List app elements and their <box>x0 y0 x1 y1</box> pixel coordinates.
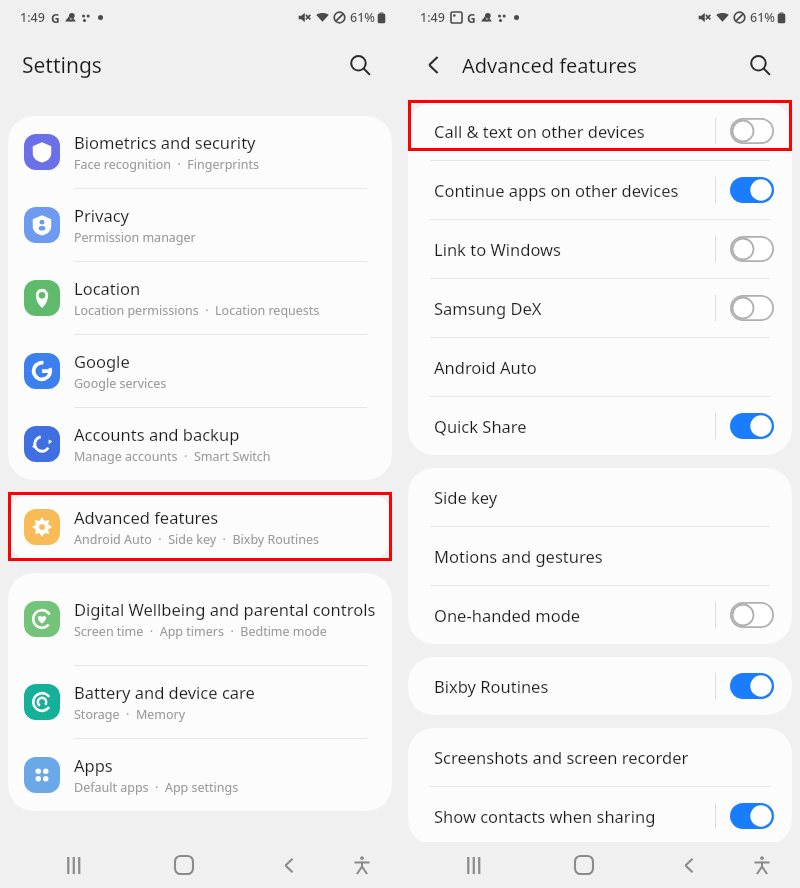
button[interactable]: Battery and device care <box>8 666 392 738</box>
button[interactable]: Samsung DeX <box>408 279 792 337</box>
staticText: Biometrics and security <box>74 131 256 153</box>
staticText: Advanced features <box>74 506 219 528</box>
button[interactable]: Accessibility <box>740 843 784 887</box>
staticText: Screenshots and screen recorder <box>434 746 689 768</box>
staticText: Link to Windows <box>434 238 715 260</box>
staticText: Face recognition · Fingerprints <box>74 156 259 173</box>
staticText: Show contacts when sharing <box>434 805 715 827</box>
staticText: Continue apps on other devices <box>434 179 715 201</box>
button[interactable]: Search <box>340 45 380 85</box>
staticText: Privacy <box>74 204 130 226</box>
staticText: 61% <box>350 9 375 26</box>
button[interactable]: Link to Windows <box>408 220 792 278</box>
staticText: Google <box>74 350 130 372</box>
button[interactable]: Home <box>562 843 606 887</box>
staticText: 1:49 <box>420 9 445 26</box>
staticText: Quick Share <box>434 415 715 437</box>
button[interactable]: On <box>730 673 774 699</box>
button[interactable]: Digital Wellbeing and parental controls <box>8 573 392 665</box>
button[interactable]: Off <box>730 118 774 144</box>
button[interactable]: Off <box>730 295 774 321</box>
staticText: Android Auto <box>434 356 537 378</box>
button[interactable]: Recents <box>451 843 495 887</box>
button[interactable]: Off <box>730 602 774 628</box>
button[interactable]: On <box>730 803 774 829</box>
staticText: G <box>51 10 60 26</box>
staticText: Advanced features <box>462 52 637 79</box>
staticText: Screen time · App timers · Bedtime mode <box>74 623 327 640</box>
staticText: Apps <box>74 754 113 776</box>
staticText: Android Auto · Side key · Bixby Routines <box>74 531 320 548</box>
button[interactable]: Bixby Routines <box>408 657 792 715</box>
button[interactable]: On <box>730 413 774 439</box>
button[interactable]: Continue apps on other devices <box>408 161 792 219</box>
button[interactable]: Search <box>740 45 780 85</box>
staticText: Manage accounts · Smart Switch <box>74 448 271 465</box>
button[interactable]: Off <box>730 236 774 262</box>
staticText: Samsung DeX <box>434 297 715 319</box>
staticText: One-handed mode <box>434 604 715 626</box>
staticText: Bixby Routines <box>434 675 715 697</box>
staticText: Permission manager <box>74 229 196 246</box>
staticText: Accounts and backup <box>74 423 240 445</box>
button[interactable]: One-handed mode <box>408 586 792 644</box>
button[interactable]: On <box>730 177 774 203</box>
button[interactable]: Back <box>414 45 454 85</box>
button[interactable]: Home <box>162 843 206 887</box>
button[interactable]: Back <box>667 843 711 887</box>
button[interactable]: Location <box>8 262 392 334</box>
staticText: Motions and gestures <box>434 545 603 567</box>
staticText: Storage · Memory <box>74 706 186 723</box>
staticText: Call & text on other devices <box>434 120 715 142</box>
staticText: Location <box>74 277 141 299</box>
button[interactable]: Side key <box>408 468 792 526</box>
staticText: Default apps · App settings <box>74 779 239 796</box>
button[interactable]: Show contacts when sharing <box>408 787 792 845</box>
button[interactable]: Recents <box>51 843 95 887</box>
button[interactable]: Android Auto <box>408 338 792 396</box>
button[interactable]: Motions and gestures <box>408 527 792 585</box>
button[interactable]: Call & text on other devices <box>408 102 792 160</box>
staticText: Digital Wellbeing and parental controls <box>74 598 376 620</box>
staticText: Location permissions · Location requests <box>74 302 320 319</box>
button[interactable]: Quick Share <box>408 397 792 455</box>
staticText: Google services <box>74 375 167 392</box>
staticText: Battery and device care <box>74 681 255 703</box>
button[interactable]: Advanced features <box>8 492 392 561</box>
staticText: Side key <box>434 486 498 508</box>
button[interactable]: Google <box>8 335 392 407</box>
button[interactable]: Back <box>267 843 311 887</box>
button[interactable]: Privacy <box>8 189 392 261</box>
staticText: 1:49 <box>20 9 45 26</box>
button[interactable]: Apps <box>8 739 392 811</box>
button[interactable]: Biometrics and security <box>8 116 392 188</box>
button[interactable]: Accessibility <box>340 843 384 887</box>
staticText: G <box>467 10 476 26</box>
staticText: Settings <box>22 51 102 80</box>
staticText: 61% <box>750 9 775 26</box>
button[interactable]: Screenshots and screen recorder <box>408 728 792 786</box>
button[interactable]: Accounts and backup <box>8 408 392 480</box>
